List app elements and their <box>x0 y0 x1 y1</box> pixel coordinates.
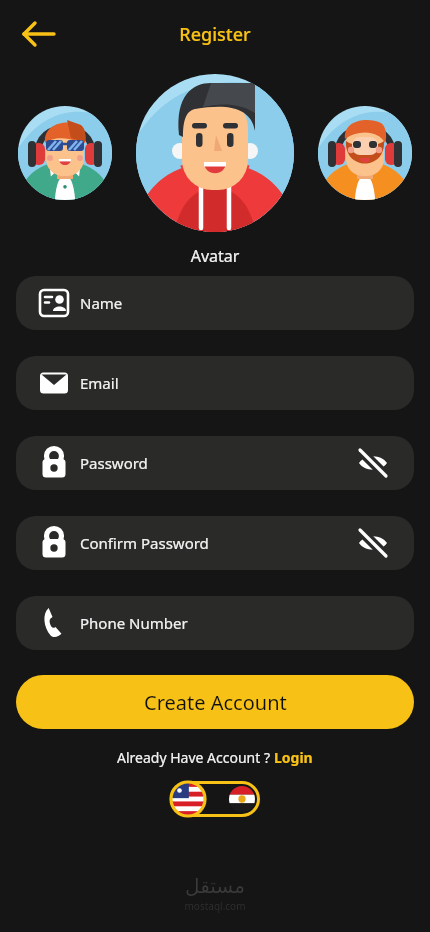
button[interactable]: Phone Number <box>16 596 414 650</box>
staticText: Name <box>80 293 123 313</box>
staticText: Avatar <box>0 245 430 267</box>
staticText: Register <box>0 22 430 47</box>
button[interactable]: Avatar option 2, selected <box>136 62 294 242</box>
staticText: Password <box>80 453 148 473</box>
button[interactable]: Login <box>274 748 313 767</box>
button[interactable]: Confirm Password <box>16 516 414 570</box>
staticText: مستقل <box>0 874 430 897</box>
button[interactable]: Password <box>16 436 414 490</box>
button[interactable]: Create Account <box>16 675 414 729</box>
staticText: Login <box>274 748 313 767</box>
button[interactable]: Avatar option 3 <box>318 100 412 212</box>
staticText: Email <box>80 373 119 393</box>
staticText: Create Account <box>144 689 287 716</box>
staticText: Already Have Account ? <box>117 748 274 767</box>
button[interactable]: Name <box>16 276 414 330</box>
staticText: Confirm Password <box>80 533 209 553</box>
staticText: Phone Number <box>80 613 188 633</box>
button[interactable]: Email <box>16 356 414 410</box>
button[interactable]: Avatar option 1 <box>18 100 112 212</box>
button[interactable]: Back <box>16 15 66 53</box>
button[interactable]: Switch language <box>170 781 260 817</box>
